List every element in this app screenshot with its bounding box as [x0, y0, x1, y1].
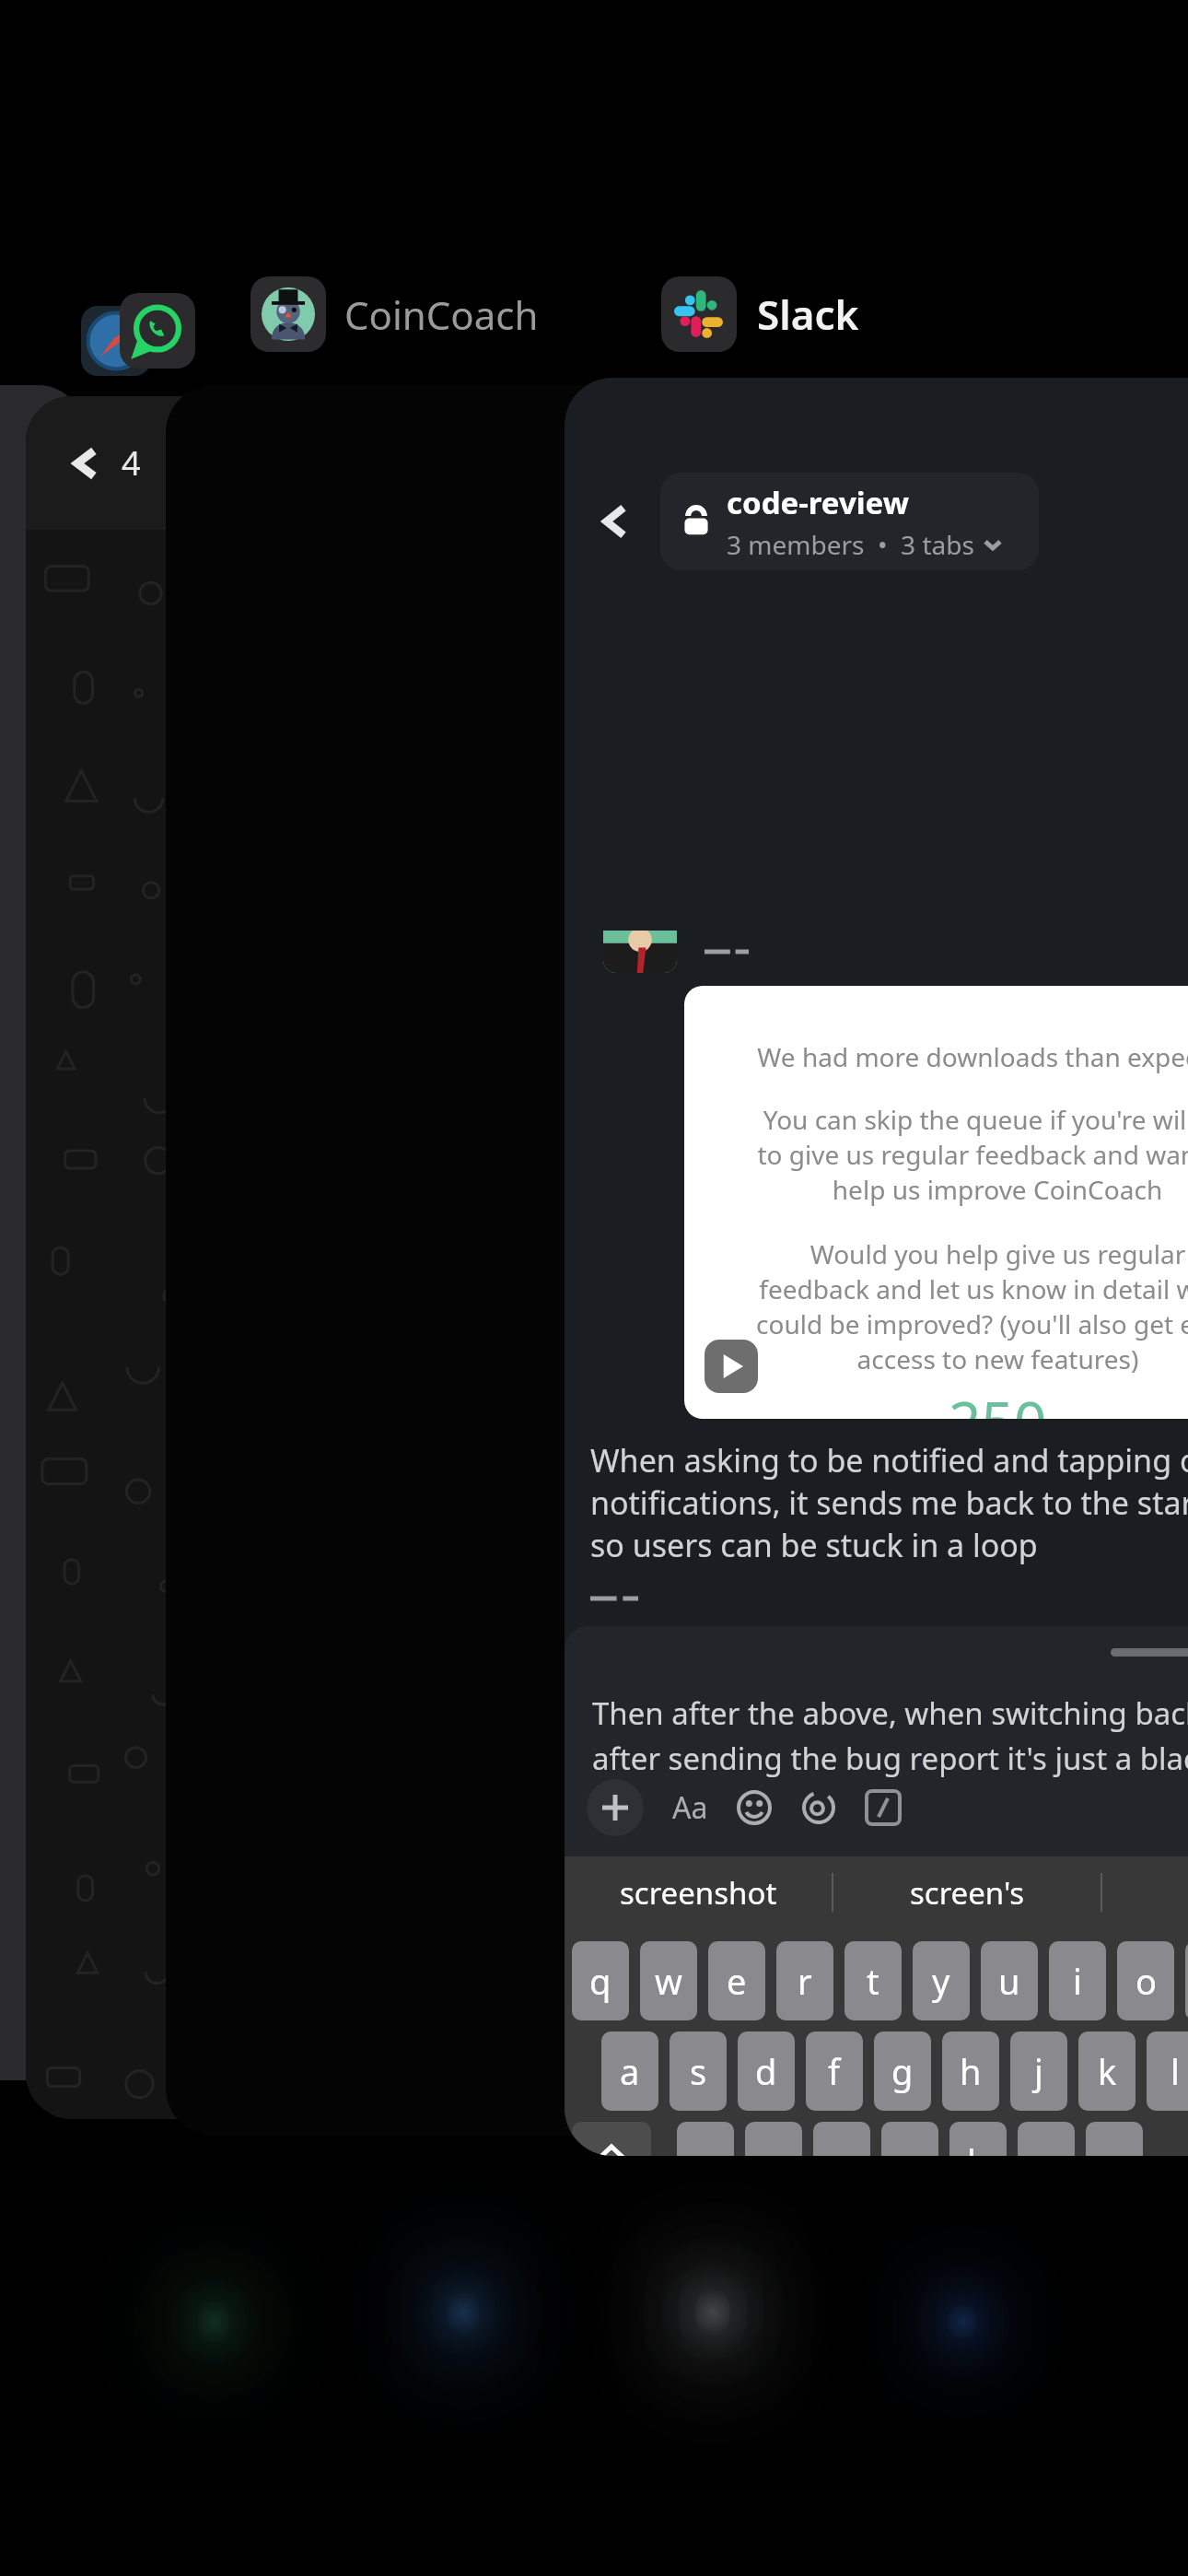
- staticText: screen's: [910, 1872, 1025, 1914]
- button[interactable]: c: [813, 2122, 870, 2156]
- button[interactable]: Shift: [572, 2122, 651, 2156]
- button[interactable]: code-review: [660, 473, 1039, 570]
- staticText: Would you help give us regular feedback …: [756, 1236, 1188, 1376]
- staticText: Then after the above, when switching bac…: [592, 1692, 1188, 1778]
- button[interactable]: Mention: [795, 1784, 843, 1832]
- button[interactable]: Emoji: [730, 1784, 778, 1832]
- button[interactable]: k: [1078, 2032, 1136, 2111]
- button[interactable]: Play: [705, 1340, 758, 1393]
- button[interactable]: p: [1185, 1941, 1188, 2020]
- staticText: a: [620, 2047, 640, 2095]
- button[interactable]: r: [776, 1941, 833, 2020]
- button[interactable]: e: [708, 1941, 765, 2020]
- staticText: CoinCoach: [344, 288, 539, 341]
- staticText: y: [932, 1957, 950, 2005]
- staticText: 4: [122, 440, 141, 486]
- button[interactable]: We had more downloads than expected: [684, 986, 1188, 1419]
- button[interactable]: a: [601, 2032, 658, 2111]
- button[interactable]: WhatsApp: [120, 293, 195, 369]
- button[interactable]: z: [677, 2122, 734, 2156]
- button[interactable]: g: [874, 2032, 931, 2111]
- staticText: When asking to be notified and tapping o…: [590, 1439, 1188, 1566]
- staticText: o: [1136, 1957, 1157, 2005]
- staticText: i: [1073, 1957, 1082, 2005]
- staticText: Slack: [757, 287, 859, 342]
- button[interactable]: Formatting: [666, 1784, 714, 1832]
- button[interactable]: screen's: [833, 1856, 1101, 1928]
- button[interactable]: 4: [26, 396, 330, 2119]
- staticText: 250: [949, 1382, 1047, 1419]
- button[interactable]: Back: [565, 378, 1188, 2156]
- button[interactable]: [1102, 1856, 1188, 1928]
- staticText: e: [727, 1957, 747, 2005]
- button[interactable]: l: [1147, 2032, 1188, 2111]
- button[interactable]: s: [670, 2032, 727, 2111]
- staticText: g: [891, 2047, 914, 2095]
- staticText: d: [755, 2047, 777, 2095]
- staticText: b: [967, 2137, 989, 2156]
- button[interactable]: screenshot: [565, 1856, 832, 1928]
- button[interactable]: [166, 385, 645, 2136]
- button[interactable]: Back: [598, 503, 635, 540]
- staticText: w: [655, 1957, 682, 2005]
- button[interactable]: i: [1049, 1941, 1106, 2020]
- button[interactable]: d: [738, 2032, 795, 2111]
- button[interactable]: j: [1010, 2032, 1067, 2111]
- button[interactable]: m: [1086, 2122, 1143, 2156]
- staticText: s: [690, 2047, 707, 2095]
- staticText: 3 members • 3 tabs: [727, 527, 974, 562]
- button[interactable]: Slack: [661, 276, 859, 352]
- button[interactable]: u: [981, 1941, 1038, 2020]
- button[interactable]: q: [572, 1941, 629, 2020]
- staticText: code-review: [727, 482, 909, 523]
- staticText: h: [960, 2047, 982, 2095]
- button[interactable]: Safari: [81, 306, 151, 376]
- staticText: j: [1034, 2047, 1043, 2095]
- button[interactable]: CoinCoach: [250, 276, 539, 352]
- button[interactable]: b: [949, 2122, 1007, 2156]
- staticText: r: [798, 1957, 812, 2005]
- button[interactable]: o: [1117, 1941, 1174, 2020]
- staticText: l: [1171, 2047, 1180, 2095]
- button[interactable]: v: [881, 2122, 938, 2156]
- staticText: t: [867, 1957, 879, 2005]
- button[interactable]: t: [844, 1941, 902, 2020]
- button[interactable]: y: [913, 1941, 970, 2020]
- staticText: u: [998, 1957, 1020, 2005]
- staticText: screenshot: [620, 1872, 777, 1914]
- staticText: You can skip the queue if you're willing…: [757, 1102, 1188, 1207]
- button[interactable]: n: [1018, 2122, 1075, 2156]
- button[interactable]: f: [806, 2032, 863, 2111]
- button[interactable]: Add attachment: [587, 1779, 644, 1836]
- staticText: f: [828, 2047, 841, 2095]
- staticText: Aa: [672, 1787, 708, 1828]
- button[interactable]: w: [640, 1941, 697, 2020]
- button[interactable]: h: [942, 2032, 999, 2111]
- staticText: k: [1098, 2047, 1117, 2095]
- button[interactable]: Slash command: [859, 1784, 907, 1832]
- button[interactable]: [0, 385, 83, 2080]
- staticText: q: [589, 1957, 611, 2005]
- button[interactable]: x: [745, 2122, 802, 2156]
- staticText: We had more downloads than expected: [757, 1039, 1188, 1074]
